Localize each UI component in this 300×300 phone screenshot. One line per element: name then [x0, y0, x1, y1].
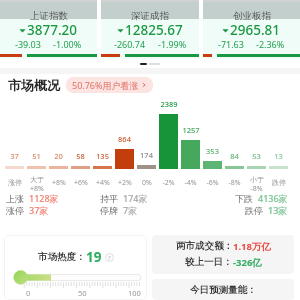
staticText: 0 [26, 288, 31, 298]
button[interactable]: 53 [247, 96, 266, 192]
button[interactable]: 20 [49, 96, 68, 192]
staticText: 51 [32, 151, 41, 161]
button[interactable]: 135 [93, 96, 112, 192]
button[interactable]: 174 [137, 96, 156, 192]
staticText: 下跌 [235, 193, 253, 204]
button[interactable]: 51 [27, 96, 46, 192]
staticText: 涨停 [6, 205, 24, 216]
staticText: +2% [118, 178, 132, 188]
button[interactable]: 58 [71, 96, 90, 192]
staticText: 停牌 [100, 205, 118, 216]
staticText: 4136家 [258, 192, 288, 204]
button[interactable]: 帮助 [105, 253, 114, 262]
staticText: ? [108, 254, 111, 262]
staticText: -1.99% [158, 38, 187, 50]
staticText: 20 [54, 151, 63, 161]
staticText: 小于 [250, 175, 264, 184]
staticText: -6% [206, 178, 219, 188]
staticText: -326亿 [233, 256, 262, 269]
button[interactable]: 864 [115, 96, 134, 192]
staticText: 1128家 [29, 192, 59, 204]
button[interactable]: 50.76%用户看涨 [66, 77, 153, 93]
button[interactable]: 两市成交额： [152, 235, 294, 274]
staticText: 0% [142, 178, 152, 188]
staticText: 84 [230, 151, 239, 161]
staticText: 大于 [30, 175, 44, 184]
staticText: -1.00% [53, 38, 82, 50]
staticText: 市场热度： [38, 251, 86, 263]
staticText: 1.18万亿 [233, 240, 271, 253]
staticText: 较上一日： [185, 256, 233, 268]
button[interactable]: 创业板指 [203, 0, 300, 59]
staticText: 深证成指 [131, 10, 169, 22]
staticText: +6% [74, 178, 88, 188]
staticText: -2% [162, 178, 175, 188]
button[interactable]: 跌停 [194, 204, 288, 216]
staticText: 跌停 [245, 205, 263, 216]
staticText: 2389 [160, 99, 178, 109]
staticText: +8% [52, 178, 66, 188]
staticText: 今日预测量能： [190, 284, 257, 296]
button[interactable]: 持平 [100, 192, 194, 204]
button[interactable]: 1257 [181, 96, 200, 192]
button[interactable]: 上证指数 [0, 0, 97, 59]
staticText: 13家 [268, 204, 288, 216]
button[interactable]: 下跌 [194, 192, 288, 204]
staticText: 上证指数 [30, 10, 68, 22]
button[interactable]: 上涨 [6, 192, 100, 204]
staticText: 50.76%用户看涨 [72, 79, 139, 91]
button[interactable]: 涨停 [6, 204, 100, 216]
button[interactable]: 深证成指 [101, 0, 199, 59]
staticText: 13 [274, 151, 283, 161]
staticText: 37 [10, 151, 19, 161]
staticText: 58 [76, 151, 85, 161]
button[interactable]: 今日预测量能： [152, 279, 294, 300]
staticText: 2965.81 [230, 21, 281, 39]
staticText: 12825.67 [125, 21, 183, 39]
staticText: 19 [86, 248, 102, 266]
staticText: 上涨 [6, 193, 24, 204]
staticText: -260.74 [114, 38, 146, 50]
staticText: -39.03 [15, 38, 41, 50]
staticText: 3877.20 [27, 21, 78, 39]
staticText: 100 [128, 288, 141, 298]
staticText: 37家 [29, 204, 49, 216]
button[interactable]: 37 [5, 96, 24, 192]
button[interactable]: 市场热度： [4, 235, 147, 300]
staticText: 跌停 [272, 178, 286, 187]
button[interactable]: 13 [269, 96, 288, 192]
staticText: 353 [206, 146, 219, 156]
staticText: -8% [228, 178, 241, 188]
staticText: 1257 [182, 125, 200, 135]
staticText: 市场概况 [8, 77, 60, 93]
staticText: 7家 [123, 204, 138, 216]
staticText: 持平 [100, 193, 118, 204]
staticText: +4% [96, 178, 110, 188]
button[interactable]: 353 [203, 96, 222, 192]
staticText: 涨停 [8, 178, 22, 187]
staticText: -71.63 [218, 38, 244, 50]
staticText: 864 [118, 134, 131, 144]
staticText: -4% [184, 178, 197, 188]
staticText: 135 [96, 151, 109, 161]
button[interactable]: 停牌 [100, 204, 194, 216]
staticText: 创业板指 [233, 10, 271, 22]
staticText: -2.36% [256, 38, 285, 50]
staticText: 174 [140, 150, 153, 160]
staticText: 174家 [123, 192, 148, 204]
staticText: 53 [252, 151, 261, 161]
staticText: +8% [30, 184, 44, 194]
staticText: -8% [250, 184, 263, 194]
button[interactable]: 2389 [159, 96, 178, 192]
staticText: 50 [78, 288, 87, 298]
staticText: 两市成交额： [176, 240, 233, 252]
button[interactable]: 84 [225, 96, 244, 192]
